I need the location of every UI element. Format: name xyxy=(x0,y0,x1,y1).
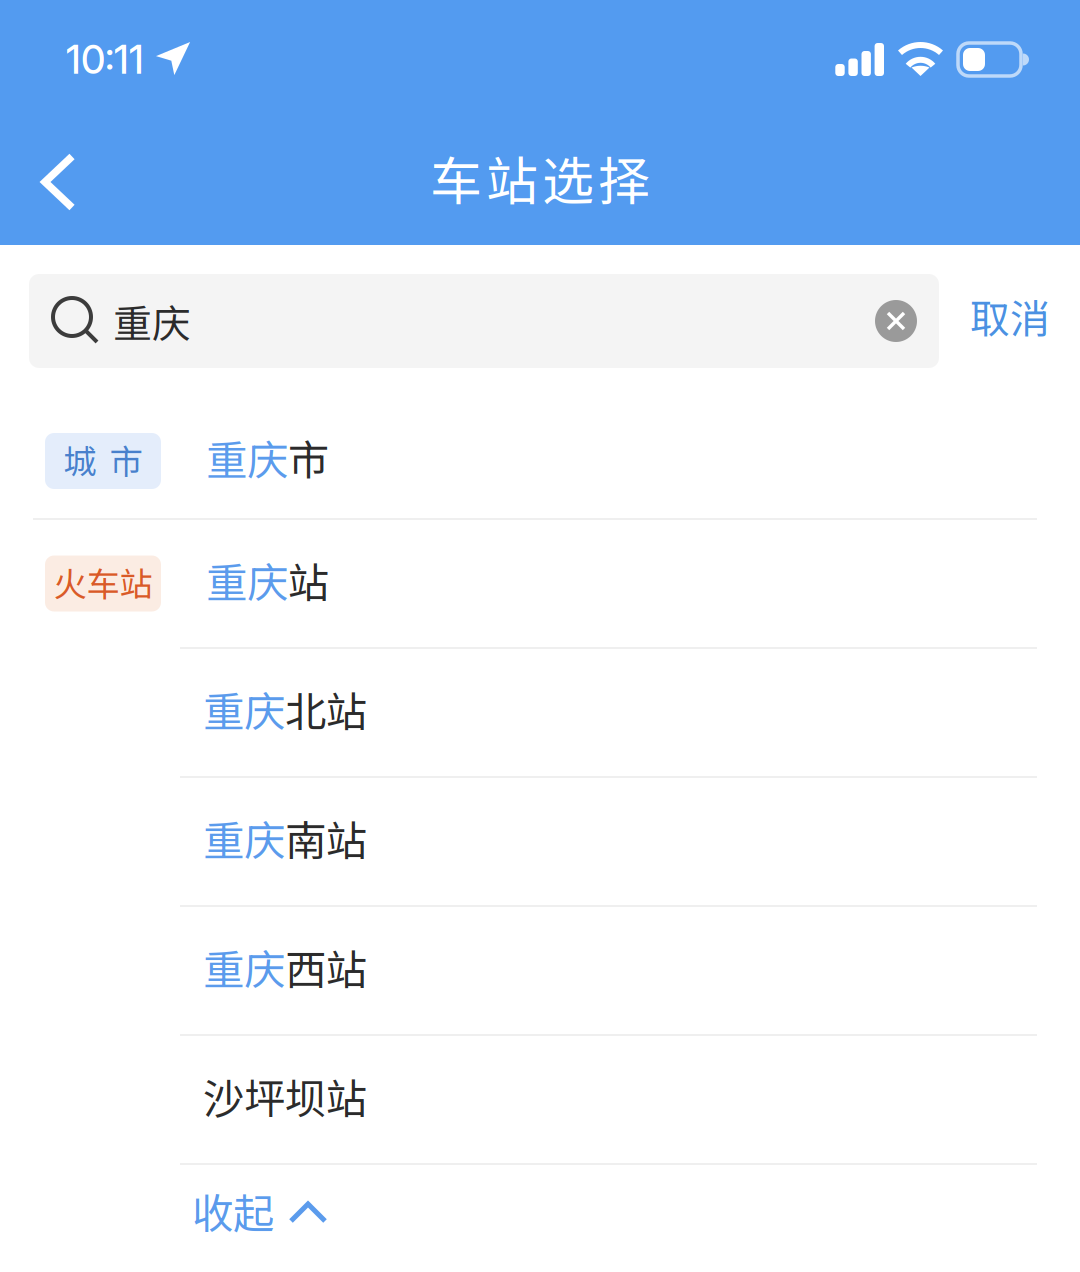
staticText: 南站 xyxy=(285,808,367,868)
staticText: 重庆 xyxy=(113,293,191,349)
staticText: 10:11 xyxy=(66,36,144,83)
button[interactable]: Back xyxy=(0,127,110,227)
staticText: 车站选择 xyxy=(430,140,650,215)
staticText: 重庆 xyxy=(203,679,285,739)
staticText: 站 xyxy=(288,550,329,610)
button[interactable]: 取消 xyxy=(939,274,1080,368)
staticText: 重庆 xyxy=(206,428,288,487)
staticText: 重庆 xyxy=(203,937,285,997)
staticText: 市 xyxy=(288,428,329,487)
staticText: 火车站 xyxy=(53,558,152,606)
staticText: 北站 xyxy=(285,679,367,739)
staticText: 重庆 xyxy=(203,808,285,868)
button[interactable]: 城 市 xyxy=(0,404,1080,518)
staticText: 收起 xyxy=(192,1181,274,1241)
button[interactable]: 重庆 xyxy=(0,649,1080,776)
staticText: 西站 xyxy=(285,937,367,997)
staticText: 重庆 xyxy=(206,550,288,610)
staticText: 取消 xyxy=(970,287,1050,345)
button[interactable]: 收起 xyxy=(0,1165,1080,1272)
button[interactable]: 重庆 xyxy=(0,778,1080,905)
button[interactable]: 火车站 xyxy=(0,520,1080,647)
staticText: 城 市 xyxy=(63,435,142,484)
button[interactable]: Clear text xyxy=(875,274,939,368)
button[interactable]: 重庆 xyxy=(0,907,1080,1034)
staticText: 沙坪坝站 xyxy=(203,1066,367,1126)
button[interactable]: 沙坪坝站 xyxy=(0,1036,1080,1163)
